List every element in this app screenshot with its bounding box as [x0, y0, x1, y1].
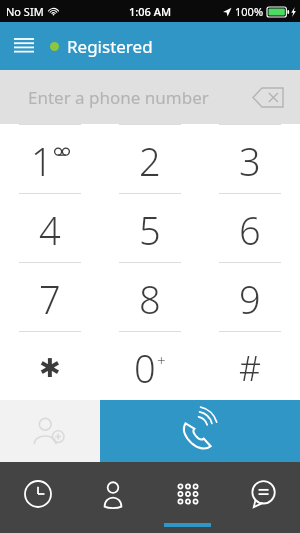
button[interactable]: 2 — [100, 124, 200, 193]
button[interactable]: ✱ — [0, 331, 100, 400]
button[interactable]: # — [200, 331, 300, 400]
staticText: ✱ — [39, 353, 61, 383]
button[interactable]: 5 — [100, 193, 200, 262]
staticText: Registered — [67, 35, 153, 58]
button[interactable]: Call — [100, 400, 300, 462]
staticText: 7 — [39, 273, 61, 325]
staticText: 1 — [31, 135, 53, 187]
staticText: 6 — [239, 204, 261, 256]
staticText: 0 — [134, 342, 156, 394]
staticText: 9 — [239, 273, 261, 325]
button[interactable]: Keypad — [150, 462, 225, 533]
button[interactable]: 6 — [200, 193, 300, 262]
button[interactable]: Call history — [0, 462, 75, 533]
staticText: # — [239, 345, 261, 391]
staticText: 100% — [235, 4, 264, 19]
staticText: Enter a phone number — [28, 86, 209, 109]
button[interactable]: 9 — [200, 262, 300, 331]
button[interactable]: 1 — [0, 124, 100, 193]
staticText: No SIM — [6, 4, 44, 19]
button[interactable]: 7 — [0, 262, 100, 331]
staticText: 2 — [139, 135, 161, 187]
button[interactable]: 0 — [100, 331, 200, 400]
button[interactable]: Contacts — [75, 462, 150, 533]
button[interactable]: Messages — [225, 462, 300, 533]
button[interactable]: 3 — [200, 124, 300, 193]
button[interactable]: Menu — [0, 22, 48, 70]
staticText: + — [157, 350, 166, 370]
staticText: 4 — [39, 204, 61, 256]
button[interactable]: Backspace — [250, 82, 286, 112]
button[interactable]: 8 — [100, 262, 200, 331]
button[interactable]: Add contact — [0, 400, 100, 462]
staticText: 3 — [239, 135, 261, 187]
staticText: 8 — [139, 273, 161, 325]
button[interactable]: Enter a phone number — [0, 70, 300, 124]
staticText: 5 — [139, 204, 161, 256]
button[interactable]: 4 — [0, 193, 100, 262]
staticText: 1:06 AM — [129, 4, 172, 19]
